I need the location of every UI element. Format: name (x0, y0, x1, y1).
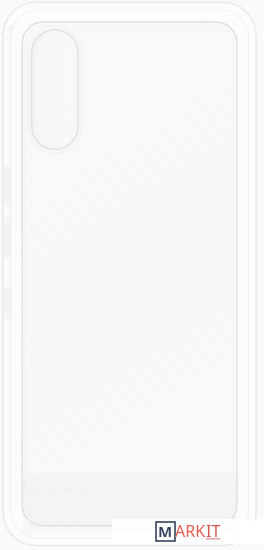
staticText: IT (206, 520, 221, 542)
other: MARKIT watermark (112, 512, 264, 550)
button[interactable]: Clear phone case product photo (0, 0, 264, 550)
staticText: ARK (175, 520, 206, 542)
staticText: M (158, 521, 173, 541)
